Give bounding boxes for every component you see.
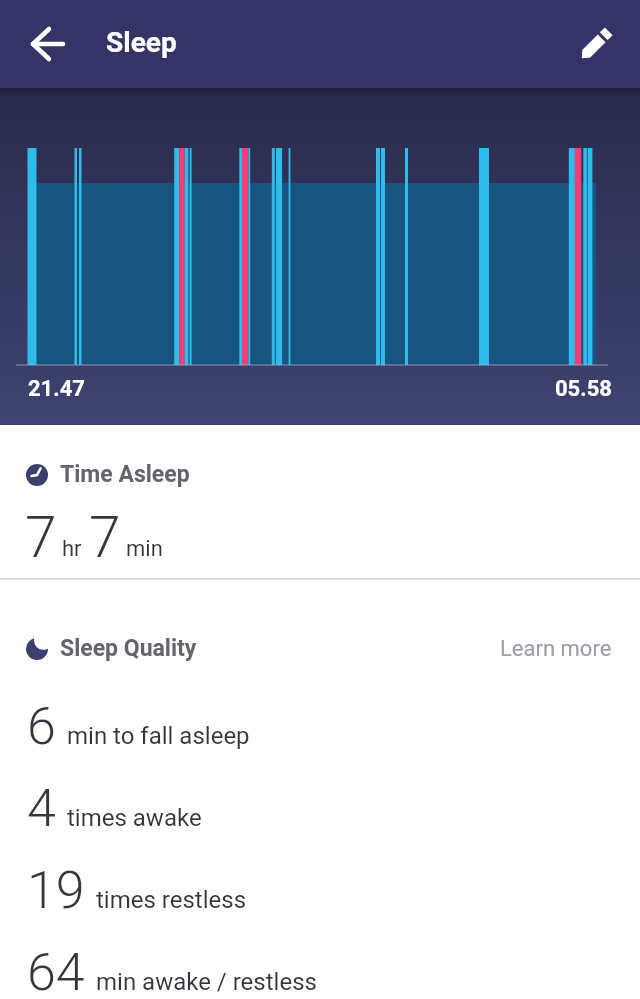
button[interactable] <box>574 22 618 66</box>
staticText: 6 <box>27 696 56 757</box>
staticText: 21.47 <box>28 376 85 402</box>
staticText: 64 <box>27 942 85 999</box>
button[interactable]: Sleep Quality <box>26 635 612 662</box>
staticText: Sleep <box>106 26 177 59</box>
staticText: Learn more <box>500 636 612 662</box>
staticText: 7 <box>89 504 121 571</box>
staticText: min <box>126 536 163 562</box>
button[interactable]: Time Asleep <box>26 461 190 488</box>
staticText: min to fall asleep <box>67 722 250 750</box>
staticText: 19 <box>27 860 85 921</box>
button[interactable]: Learn more <box>500 636 612 662</box>
staticText: times awake <box>67 804 202 832</box>
staticText: hr <box>62 536 82 562</box>
staticText: 7 <box>25 504 57 571</box>
button[interactable] <box>26 22 70 66</box>
staticText: Time Asleep <box>60 461 190 488</box>
staticText: min awake / restless <box>96 968 317 996</box>
staticText: 05.58 <box>555 376 612 402</box>
staticText: times restless <box>96 886 247 914</box>
staticText: 4 <box>27 778 56 839</box>
staticText: Sleep Quality <box>60 635 197 662</box>
